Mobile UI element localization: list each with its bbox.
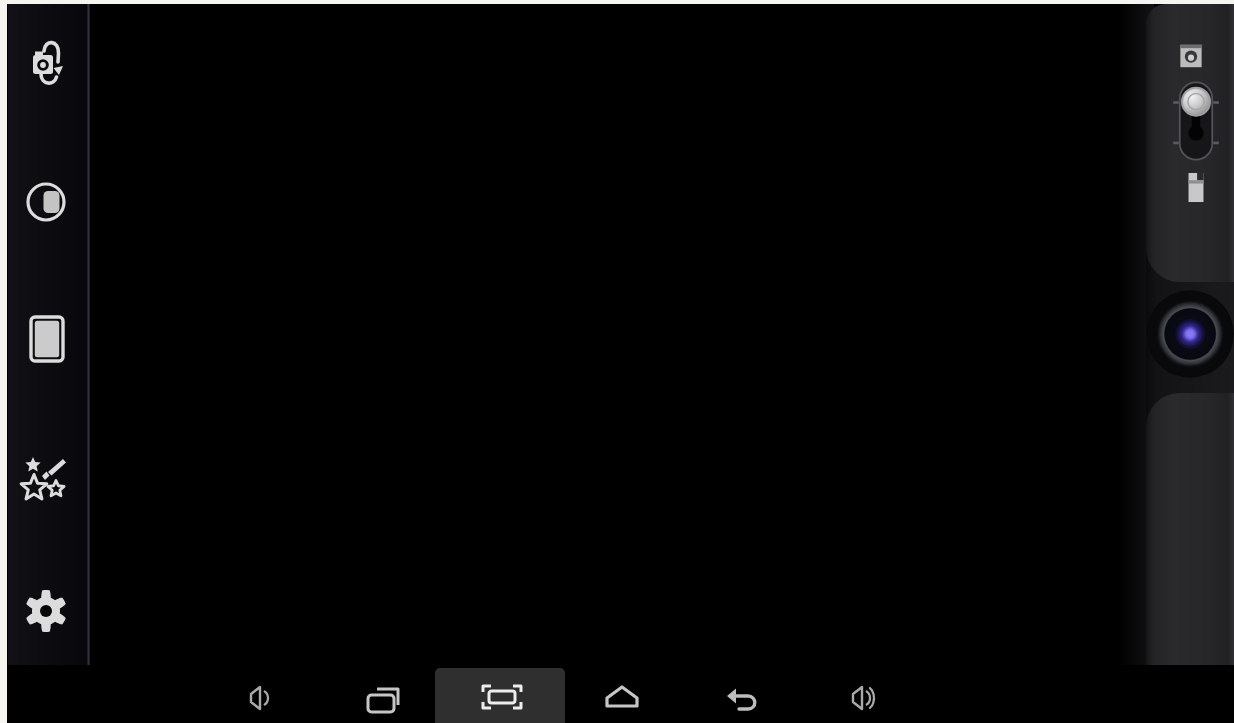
button[interactable]: Back bbox=[713, 669, 771, 723]
button[interactable]: Switch camera bbox=[14, 31, 78, 95]
button[interactable]: Settings bbox=[18, 583, 74, 639]
button[interactable]: Screenshot bbox=[473, 668, 531, 723]
button[interactable]: Volume down bbox=[231, 669, 289, 723]
button[interactable]: Video mode bbox=[1185, 171, 1207, 204]
button[interactable]: Volume up bbox=[833, 669, 891, 723]
button[interactable]: Photo mode bbox=[1177, 42, 1205, 70]
button[interactable]: Shutter bbox=[1146, 288, 1234, 380]
button[interactable]: Home bbox=[593, 668, 651, 723]
button[interactable]: White balance bbox=[19, 311, 75, 367]
button[interactable]: Effects bbox=[14, 446, 78, 510]
button[interactable]: Recent apps bbox=[354, 670, 412, 723]
button[interactable]: Scene mode bbox=[18, 174, 74, 230]
button[interactable]: Camera video mode toggle bbox=[1168, 78, 1224, 164]
